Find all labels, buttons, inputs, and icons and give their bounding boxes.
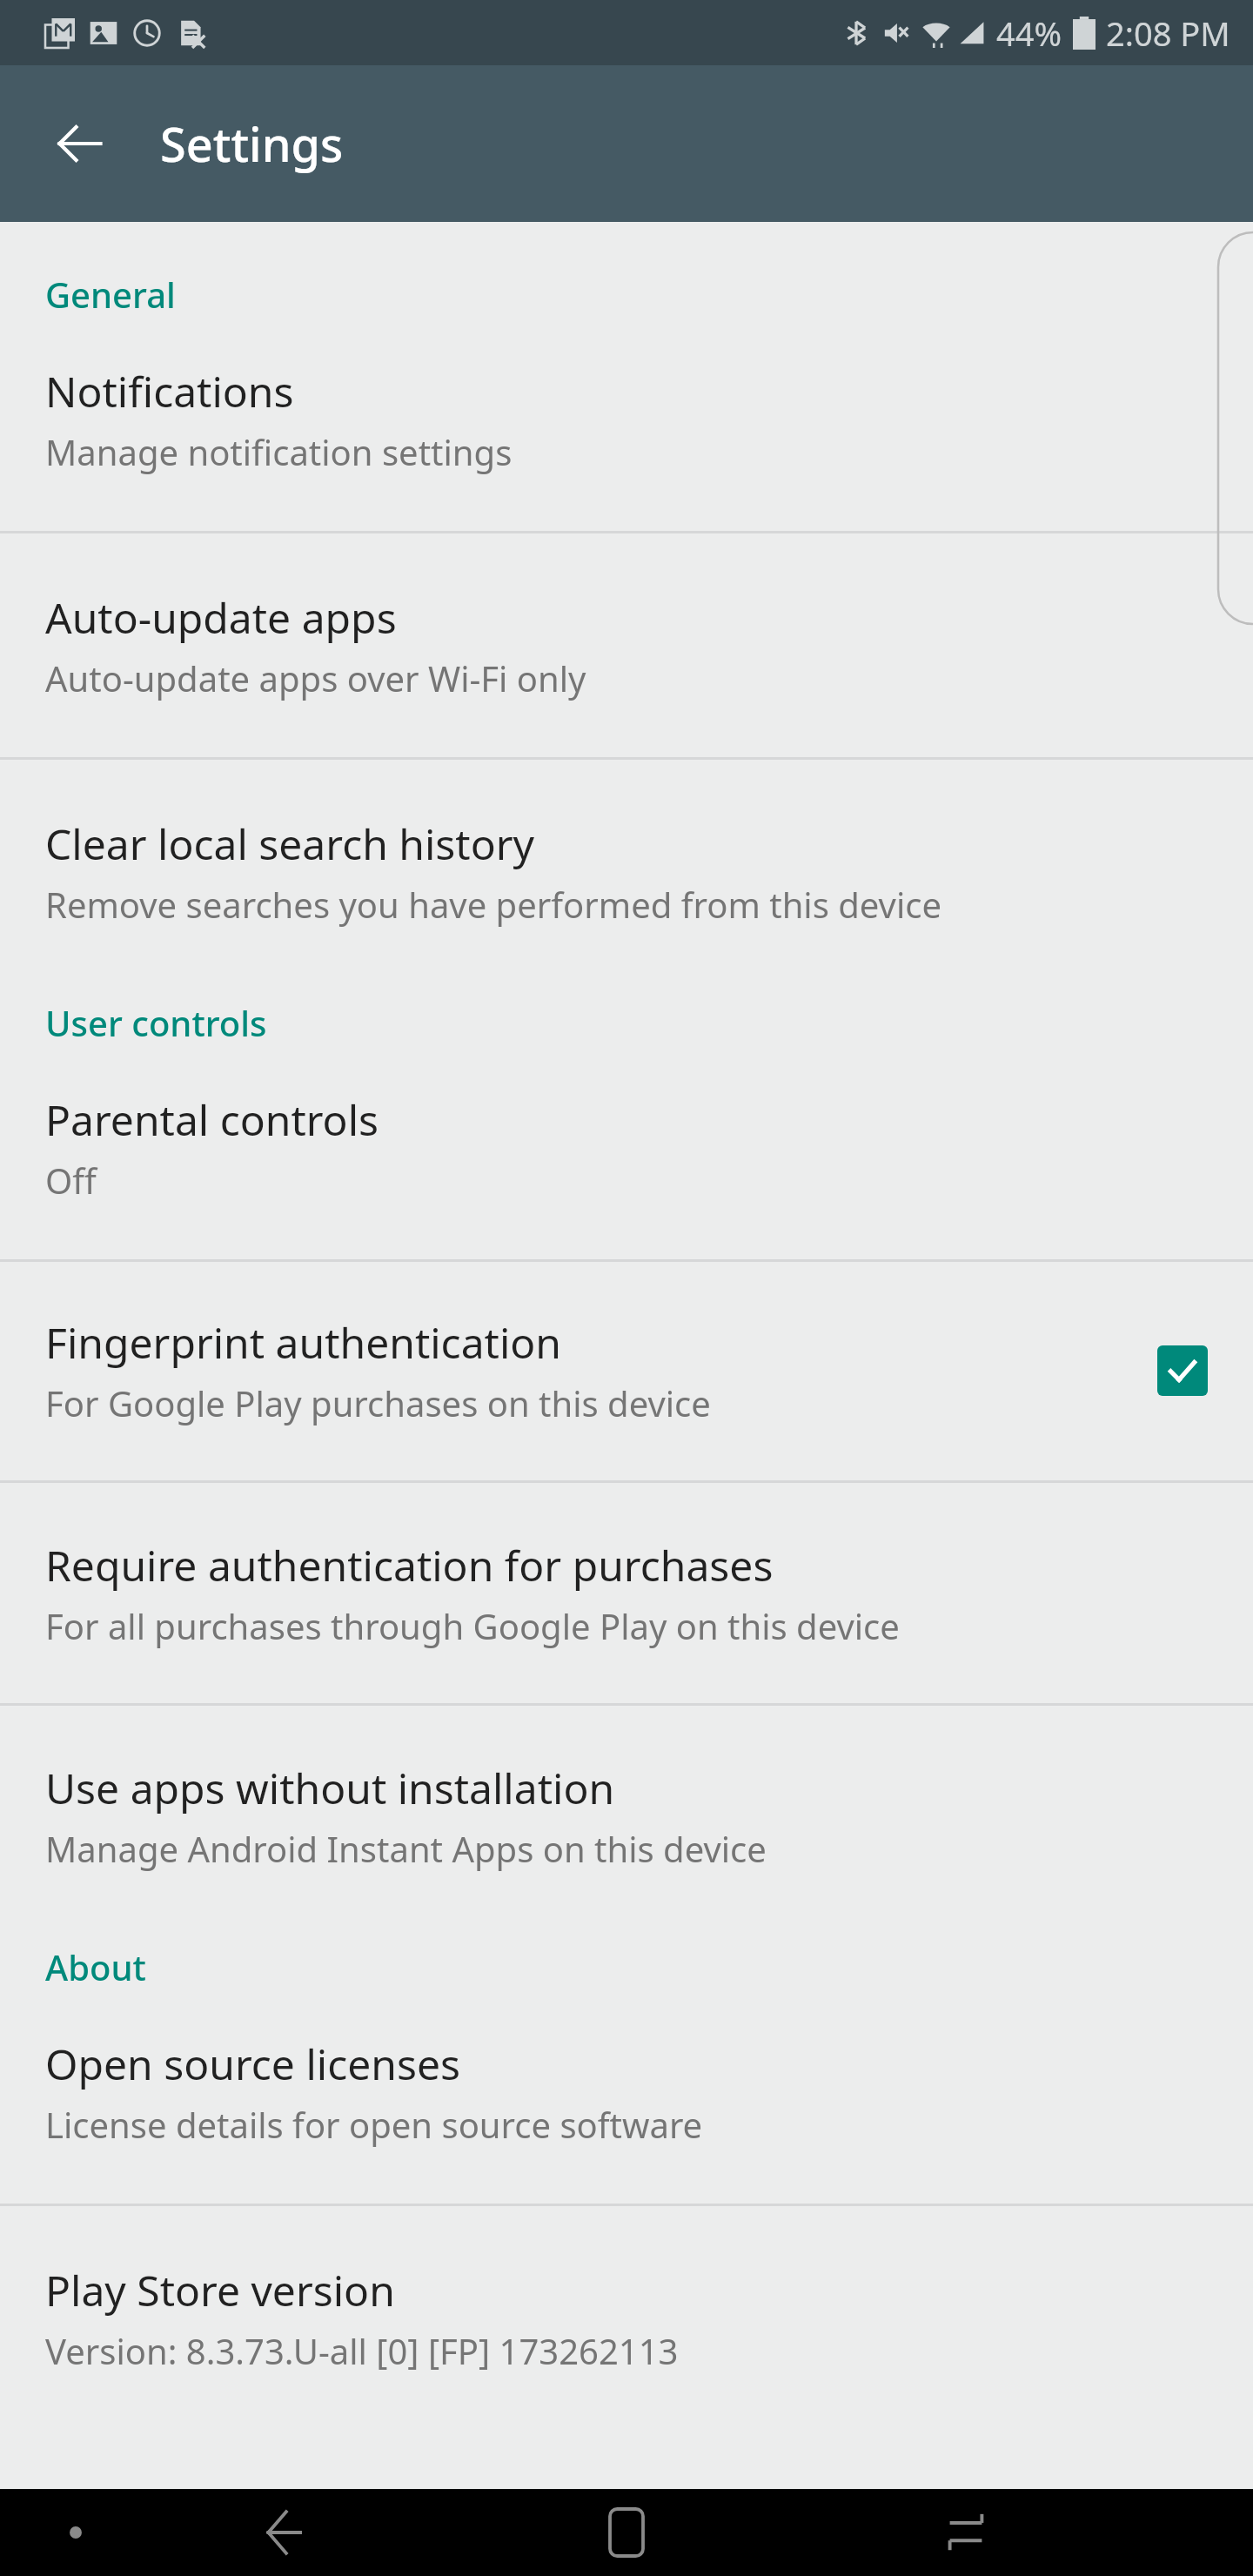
staticText: Parental controls — [45, 1091, 379, 1148]
button[interactable]: Open source licenses — [0, 1990, 1253, 2204]
button[interactable]: Home — [574, 2489, 679, 2576]
staticText: User controls — [45, 999, 267, 1046]
other: Fingerprint authentication toggle — [1157, 1345, 1208, 1396]
button[interactable]: Use apps without installation — [0, 1706, 1253, 1907]
staticText: For all purchases through Google Play on… — [45, 1602, 900, 1649]
staticText: Fingerprint authentication — [45, 1314, 561, 1371]
staticText: General — [45, 271, 176, 318]
staticText: Manage Android Instant Apps on this devi… — [45, 1825, 767, 1872]
button[interactable]: Play Store version — [0, 2206, 1253, 2409]
staticText: Version: 8.3.73.U-all [0] [FP] 173262113 — [45, 2327, 679, 2374]
staticText: For Google Play purchases on this device — [45, 1379, 711, 1426]
staticText: About — [45, 1943, 146, 1990]
staticText: Play Store version — [45, 2262, 395, 2318]
staticText: Off — [45, 1157, 97, 1204]
staticText: 2:08 PM — [1106, 10, 1230, 56]
staticText: Require authentication for purchases — [45, 1537, 774, 1593]
button[interactable]: Parental controls — [0, 1046, 1253, 1259]
staticText: Manage notification settings — [45, 428, 513, 475]
button[interactable]: Auto-update apps — [0, 533, 1253, 757]
staticText: Auto-update apps over Wi-Fi only — [45, 654, 586, 701]
staticText: Clear local search history — [45, 815, 535, 872]
button[interactable]: Notifications — [0, 318, 1253, 531]
staticText: License details for open source software — [45, 2101, 703, 2148]
button[interactable]: Recent apps — [914, 2489, 1018, 2576]
button[interactable]: Fingerprint authentication — [0, 1262, 1253, 1480]
button[interactable]: Require authentication for purchases — [0, 1483, 1253, 1703]
staticText: Settings — [160, 111, 344, 176]
staticText: 44% — [996, 10, 1062, 56]
staticText: Use apps without installation — [45, 1760, 615, 1816]
button[interactable]: Back — [235, 2489, 339, 2576]
button[interactable]: Clear local search history — [0, 760, 1253, 963]
staticText: Open source licenses — [45, 2036, 460, 2092]
staticText: Notifications — [45, 363, 294, 419]
button[interactable]: Back — [45, 109, 115, 178]
staticText: Remove searches you have performed from … — [45, 881, 941, 928]
staticText: Auto-update apps — [45, 589, 397, 646]
